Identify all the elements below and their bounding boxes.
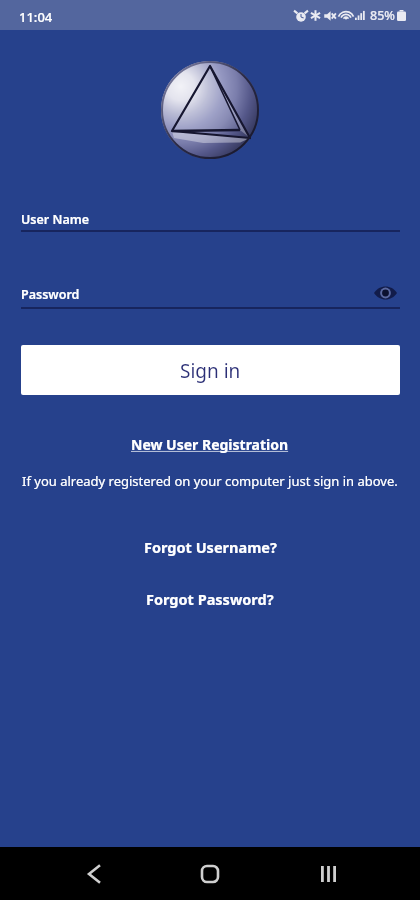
- button[interactable]: Back: [70, 847, 118, 900]
- button[interactable]: Recent apps: [304, 847, 352, 900]
- button[interactable]: User Name: [21, 206, 400, 232]
- staticText: Password: [21, 286, 80, 303]
- staticText: New User Registration: [131, 435, 289, 454]
- button[interactable]: New User Registration: [0, 433, 420, 455]
- button[interactable]: Home: [186, 847, 234, 900]
- button[interactable]: Sign in: [21, 345, 400, 395]
- staticText: 85%: [370, 7, 395, 24]
- button[interactable]: Password: [21, 281, 400, 307]
- button[interactable]: Forgot Username?: [0, 535, 420, 559]
- staticText: Forgot Password?: [146, 589, 274, 609]
- button[interactable]: Forgot Password?: [0, 587, 420, 611]
- staticText: If you already registered on your comput…: [22, 472, 398, 490]
- staticText: Sign in: [180, 358, 241, 384]
- staticText: Forgot Username?: [144, 537, 277, 557]
- staticText: 11:04: [19, 8, 53, 26]
- staticText: User Name: [21, 211, 90, 228]
- button[interactable]: Show password: [370, 278, 400, 308]
